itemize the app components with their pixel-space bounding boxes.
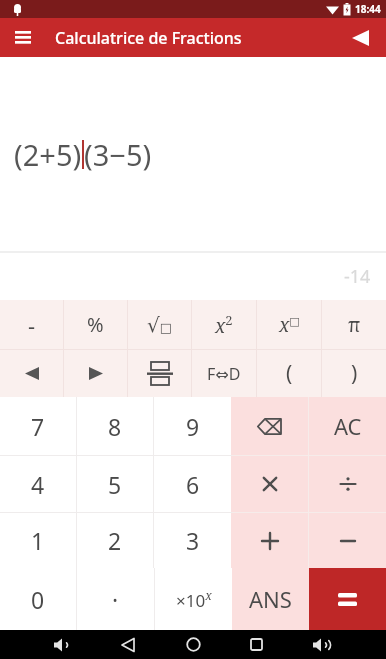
button[interactable]: x□ — [257, 300, 321, 349]
staticText: 4 — [31, 469, 45, 500]
staticText: 5 — [108, 469, 122, 500]
button[interactable]: 2 — [77, 513, 153, 568]
button[interactable] — [309, 456, 386, 512]
staticText: x□ — [279, 312, 300, 338]
button[interactable]: 6 — [154, 456, 231, 512]
button[interactable] — [114, 630, 142, 659]
staticText: ANS — [249, 584, 292, 614]
staticText: 7 — [31, 411, 45, 442]
staticText: Calculatrice de Fractions — [55, 27, 242, 49]
button[interactable]: √□ — [128, 300, 191, 349]
staticText: ) — [351, 359, 358, 388]
button[interactable] — [307, 630, 335, 659]
button[interactable]: 9 — [154, 397, 231, 455]
staticText: (2+5) — [14, 135, 82, 174]
button[interactable]: AC — [309, 397, 386, 455]
staticText: π — [348, 312, 361, 338]
staticText: 0 — [31, 584, 45, 615]
staticText: AC — [334, 411, 362, 441]
staticText: √□ — [147, 313, 173, 336]
button[interactable]: ×10x — [155, 568, 232, 630]
button[interactable] — [343, 18, 377, 57]
staticText: ( — [286, 359, 293, 388]
button[interactable]: 8 — [77, 397, 153, 455]
staticText: 9 — [186, 411, 200, 442]
button[interactable]: x2 — [192, 300, 256, 349]
staticText: (3−5) — [84, 135, 152, 174]
staticText: 6 — [186, 469, 200, 500]
button[interactable] — [309, 568, 386, 630]
staticText: 2 — [108, 525, 122, 556]
staticText: % — [87, 311, 104, 338]
staticText: 8 — [108, 411, 122, 442]
button[interactable] — [242, 630, 270, 659]
button[interactable] — [179, 630, 207, 659]
button[interactable]: 4 — [0, 456, 76, 512]
button[interactable] — [231, 397, 308, 455]
staticText: x2 — [215, 311, 233, 338]
button[interactable]: % — [64, 300, 127, 349]
staticText: 1 — [31, 525, 45, 556]
staticText: F⇔D — [207, 363, 241, 385]
staticText: · — [112, 584, 119, 615]
button[interactable]: · — [77, 568, 154, 630]
button[interactable]: ( — [257, 350, 321, 397]
button[interactable]: ) — [322, 350, 386, 397]
button[interactable] — [231, 513, 308, 568]
staticText: 18:44 — [355, 2, 381, 16]
button[interactable] — [0, 350, 63, 397]
button[interactable]: 5 — [77, 456, 153, 512]
button[interactable] — [64, 350, 127, 397]
button[interactable]: 0 — [0, 568, 76, 630]
button[interactable] — [0, 18, 46, 57]
button[interactable]: ANS — [232, 568, 309, 630]
button[interactable]: 7 — [0, 397, 76, 455]
staticText: -14 — [344, 264, 371, 289]
button[interactable]: F⇔D — [192, 350, 256, 397]
button[interactable]: 3 — [154, 513, 231, 568]
button[interactable]: - — [0, 300, 63, 349]
button[interactable] — [128, 350, 191, 397]
staticText: ×10x — [176, 587, 212, 612]
button[interactable] — [48, 630, 76, 659]
staticText: - — [28, 310, 36, 340]
button[interactable]: π — [322, 300, 386, 349]
button[interactable] — [231, 456, 308, 512]
button[interactable]: 1 — [0, 513, 76, 568]
staticText: 3 — [186, 525, 200, 556]
button[interactable] — [309, 513, 386, 568]
